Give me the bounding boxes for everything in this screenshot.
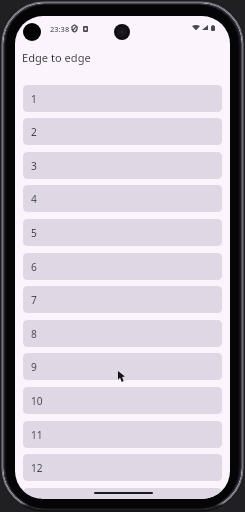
button[interactable]: 2: [23, 118, 222, 145]
staticText: 12: [31, 461, 43, 475]
staticText: 2: [31, 125, 37, 139]
button[interactable]: 5: [23, 219, 222, 246]
button[interactable]: 4: [23, 185, 222, 212]
staticText: 6: [31, 260, 37, 274]
staticText: 10: [31, 394, 43, 408]
button[interactable]: 12: [23, 454, 222, 481]
staticText: 3: [31, 159, 37, 173]
staticText: 8: [31, 327, 37, 341]
button[interactable]: 10: [23, 387, 222, 414]
staticText: 1: [31, 92, 37, 106]
button[interactable]: 6: [23, 253, 222, 280]
button[interactable]: 9: [23, 353, 222, 380]
staticText: 13: [31, 495, 43, 499]
button[interactable]: 7: [23, 286, 222, 313]
staticText: 5: [31, 226, 37, 240]
button[interactable]: 8: [23, 320, 222, 347]
staticText: 7: [31, 293, 37, 307]
staticText: 9: [31, 360, 37, 374]
button[interactable]: 11: [23, 421, 222, 448]
button[interactable]: 3: [23, 152, 222, 179]
staticText: Edge to edge: [22, 50, 91, 65]
staticText: 4: [31, 192, 37, 206]
staticText: 23:38: [50, 24, 70, 34]
staticText: 11: [31, 428, 43, 442]
button[interactable]: 1: [23, 85, 222, 112]
button[interactable]: 13: [23, 488, 222, 499]
